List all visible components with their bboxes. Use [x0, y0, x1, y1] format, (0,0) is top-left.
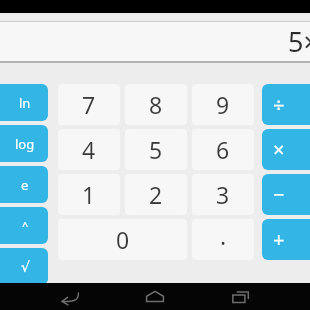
staticText: 7: [82, 89, 96, 120]
button[interactable]: Recent apps: [214, 283, 266, 310]
staticText: ÷: [273, 91, 285, 118]
button[interactable]: Divide: [262, 84, 310, 125]
staticText: log: [15, 135, 35, 153]
button[interactable]: Multiply: [262, 129, 310, 170]
button[interactable]: 1: [58, 174, 120, 215]
staticText: 5: [149, 134, 163, 165]
button[interactable]: Add: [262, 219, 310, 260]
button[interactable]: 2: [125, 174, 187, 215]
button[interactable]: Home: [129, 283, 181, 310]
button[interactable]: Square root: [0, 248, 48, 285]
staticText: ^: [22, 218, 29, 233]
staticText: √: [21, 259, 30, 275]
staticText: ×: [273, 136, 285, 163]
staticText: +: [273, 226, 285, 253]
button[interactable]: 7: [58, 84, 120, 125]
staticText: 2: [149, 179, 163, 210]
button[interactable]: Power: [0, 207, 48, 244]
button[interactable]: Subtract: [262, 174, 310, 215]
staticText: e: [21, 176, 29, 194]
button[interactable]: 4: [58, 129, 120, 170]
button[interactable]: 0: [58, 219, 187, 260]
button[interactable]: Back: [44, 283, 96, 310]
button[interactable]: 3: [192, 174, 254, 215]
staticText: −: [273, 181, 285, 208]
button[interactable]: .: [192, 219, 254, 260]
button[interactable]: 6: [192, 129, 254, 170]
staticText: 1: [82, 179, 96, 210]
staticText: 0: [116, 224, 130, 255]
button[interactable]: 8: [125, 84, 187, 125]
staticText: 4: [82, 134, 96, 165]
staticText: .: [220, 220, 227, 251]
button[interactable]: 5: [125, 129, 187, 170]
button[interactable]: log: [0, 125, 48, 162]
button[interactable]: 9: [192, 84, 254, 125]
staticText: 3: [216, 179, 230, 210]
staticText: 8: [149, 89, 163, 120]
staticText: 9: [216, 89, 230, 120]
staticText: ln: [19, 94, 31, 112]
button[interactable]: 5×: [0, 22, 310, 61]
staticText: 6: [216, 134, 230, 165]
button[interactable]: ln: [0, 84, 48, 121]
button[interactable]: e: [0, 166, 48, 203]
staticText: 5×: [288, 23, 310, 60]
